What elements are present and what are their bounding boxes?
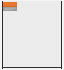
- button[interactable]: App bar: [2, 1, 62, 68]
- button[interactable]: App bar: [3, 2, 17, 7]
- button[interactable]: Content block: [3, 7, 17, 11]
